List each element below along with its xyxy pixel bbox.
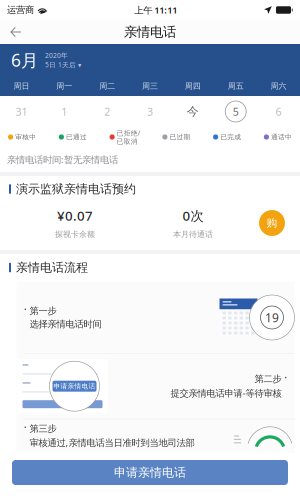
staticText: 购	[266, 216, 277, 229]
button[interactable]: 购	[244, 202, 300, 244]
staticText: 19	[265, 309, 279, 325]
staticText: 审核中	[15, 133, 36, 141]
staticText: 演示监狱亲情电话预约	[16, 182, 136, 196]
staticText: 6	[276, 104, 282, 119]
button[interactable]: 3	[129, 96, 171, 127]
button[interactable]: 5	[214, 96, 257, 127]
button[interactable]: 今	[171, 96, 214, 127]
button[interactable]: 2020年	[45, 51, 81, 69]
staticText: 31	[15, 104, 27, 119]
button[interactable]: 返回	[0, 20, 32, 44]
staticText: 已拒绝/	[117, 128, 140, 137]
staticText: 周一	[56, 81, 72, 91]
staticText: 2020年	[45, 51, 68, 60]
button[interactable]: 6	[257, 96, 300, 127]
button[interactable]: 2	[86, 96, 129, 127]
staticText: 申请亲情电话	[114, 465, 186, 480]
staticText: 探视卡余额	[55, 229, 95, 239]
staticText: 2	[104, 104, 110, 119]
button[interactable]: 31	[0, 96, 43, 127]
staticText: 已完成	[220, 133, 241, 141]
staticText: 已通过	[66, 133, 87, 141]
staticText: 0次	[182, 207, 203, 224]
staticText: 第三步	[30, 423, 57, 434]
staticText: 第二步	[254, 373, 281, 385]
staticText: 已取消	[117, 137, 138, 145]
staticText: 选择亲情电话时间	[30, 318, 102, 330]
staticText: 周三	[142, 81, 158, 91]
staticText: 6月	[11, 48, 38, 71]
staticText: 已过期	[169, 133, 190, 141]
button[interactable]: 申请亲情电话	[12, 460, 288, 485]
staticText: 今	[187, 104, 199, 119]
staticText: 周二	[99, 81, 115, 91]
button[interactable]: 1	[43, 96, 86, 127]
staticText: 上午 11:11	[134, 4, 177, 16]
staticText: 亲情电话	[124, 24, 176, 40]
staticText: 提交亲情电话申请-等待审核	[170, 387, 281, 399]
staticText: 5	[233, 104, 239, 119]
staticText: 5日 1天后 ▾	[45, 60, 81, 69]
staticText: 亲情电话流程	[16, 260, 88, 275]
staticText: 申请亲情电话	[53, 382, 95, 390]
staticText: 3	[147, 104, 153, 119]
staticText: 1	[61, 104, 67, 119]
staticText: 周六	[271, 81, 287, 91]
staticText: 审核通过,亲情电话当日准时到当地司法部	[30, 436, 195, 449]
staticText: 通话中	[271, 133, 292, 141]
staticText: 周五	[228, 81, 244, 91]
staticText: 亲情电话时间:暂无亲情电话	[7, 153, 118, 166]
staticText: 本月待通话	[173, 229, 213, 239]
staticText: 周日	[13, 81, 29, 91]
staticText: 周四	[185, 81, 201, 91]
staticText: 第一步	[30, 305, 57, 316]
staticText: 运营商	[7, 4, 34, 16]
staticText: ¥0.07	[57, 207, 93, 224]
